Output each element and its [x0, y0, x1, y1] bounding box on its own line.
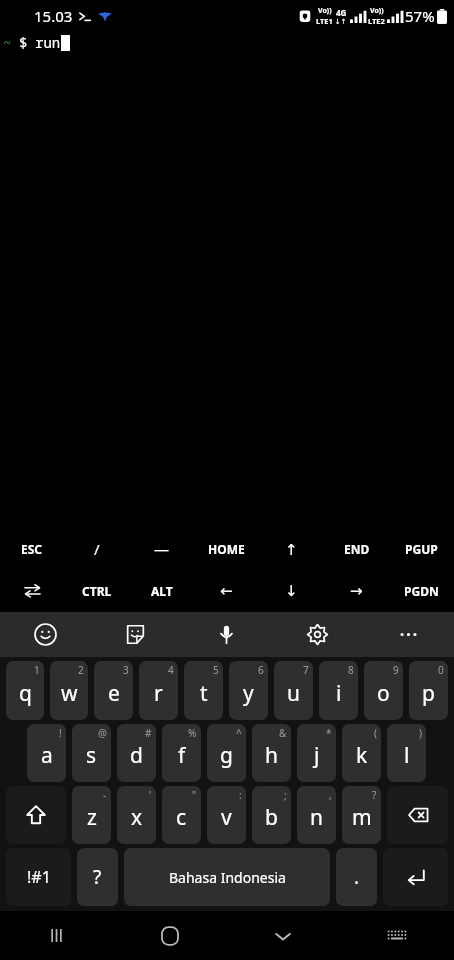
button[interactable]: # [117, 724, 156, 782]
staticText: LTE1 [316, 16, 333, 26]
staticText: PGUP [405, 541, 438, 557]
staticText: 7 [303, 663, 309, 677]
button[interactable]: ↑ [259, 529, 324, 569]
staticText: ( [374, 726, 377, 740]
staticText: p [422, 679, 435, 708]
staticText: n [310, 803, 323, 832]
staticText: Vo)) [318, 6, 332, 16]
button[interactable]: ( [342, 724, 381, 782]
button[interactable]: CTRL [64, 569, 129, 612]
button[interactable]: Change keyboard [340, 911, 454, 960]
button[interactable]: . [336, 848, 377, 906]
staticText: d [130, 741, 143, 770]
staticText: q [19, 679, 32, 708]
staticText: ← [220, 582, 233, 599]
button[interactable]: !#1 [6, 848, 71, 906]
staticText: b [265, 803, 278, 832]
staticText: z [87, 803, 97, 832]
button[interactable]: 7 [274, 661, 313, 720]
staticText: 15.03 [34, 6, 73, 26]
button[interactable]: Enter [383, 848, 448, 906]
staticText: - [103, 788, 107, 802]
staticText: r [154, 679, 163, 708]
staticText: 2 [78, 663, 84, 677]
button[interactable]: / [64, 529, 129, 569]
button[interactable]: * [297, 724, 336, 782]
staticText: 57% [405, 6, 435, 26]
staticText: % [188, 726, 197, 740]
button[interactable]: " [162, 786, 201, 844]
button[interactable]: % [162, 724, 201, 782]
staticText: HOME [208, 541, 245, 557]
staticText: l [404, 741, 410, 770]
staticText: END [344, 541, 370, 557]
button[interactable]: Keyboard settings [272, 612, 363, 657]
staticText: i [336, 679, 342, 708]
button[interactable]: More options [363, 612, 454, 657]
button[interactable]: Home [113, 911, 226, 960]
button[interactable]: 6 [229, 661, 268, 720]
staticText: f [178, 741, 186, 770]
button[interactable]: ) [387, 724, 426, 782]
staticText: # [145, 726, 152, 740]
staticText: & [279, 726, 287, 740]
button[interactable]: — [129, 529, 194, 569]
staticText: u [287, 679, 300, 708]
staticText: . [354, 864, 360, 890]
button[interactable]: 1 [6, 661, 44, 720]
button[interactable]: Emoji [0, 612, 90, 657]
button[interactable]: ^ [207, 724, 246, 782]
button[interactable]: Stickers [90, 612, 181, 657]
button[interactable]: ↓ [259, 569, 324, 612]
button[interactable]: → [324, 569, 389, 612]
button[interactable]: 5 [184, 661, 223, 720]
button[interactable]: Recents [0, 911, 113, 960]
staticText: , [329, 788, 332, 802]
button[interactable]: Bahasa Indonesia [124, 848, 330, 906]
button[interactable]: Tab [0, 569, 64, 612]
staticText: CTRL [82, 583, 112, 599]
button[interactable]: Voice input [181, 612, 272, 657]
staticText: o [377, 679, 390, 708]
button[interactable]: PGUP [389, 529, 454, 569]
button[interactable]: Backspace [387, 786, 448, 844]
button[interactable]: 8 [319, 661, 358, 720]
button[interactable]: & [252, 724, 291, 782]
staticText: 3 [123, 663, 129, 677]
staticText: ) [419, 726, 422, 740]
button[interactable]: ! [27, 724, 66, 782]
staticText: t [200, 679, 208, 708]
button[interactable]: Shift [6, 786, 66, 844]
button[interactable]: Hide keyboard [226, 911, 340, 960]
button[interactable]: 0 [409, 661, 448, 720]
staticText: ↓ [285, 582, 298, 599]
staticText: x [131, 803, 143, 832]
button[interactable]: ? [77, 848, 118, 906]
button[interactable]: ALT [129, 569, 194, 612]
button[interactable]: @ [72, 724, 111, 782]
button[interactable]: 3 [94, 661, 133, 720]
button[interactable]: ← [194, 569, 259, 612]
button[interactable]: ? [342, 786, 381, 844]
button[interactable]: HOME [194, 529, 259, 569]
button[interactable]: 4 [139, 661, 178, 720]
button[interactable]: , [297, 786, 336, 844]
staticText: 6 [258, 663, 264, 677]
button[interactable]: ESC [0, 529, 64, 569]
staticText: — [154, 539, 170, 559]
button[interactable]: 9 [364, 661, 403, 720]
button[interactable]: ; [252, 786, 291, 844]
staticText: 1 [34, 663, 40, 677]
button[interactable]: 2 [50, 661, 88, 720]
staticText: h [265, 741, 278, 770]
staticText: 0 [438, 663, 444, 677]
staticText: a [41, 741, 53, 770]
staticText: / [94, 539, 100, 559]
button[interactable]: - [72, 786, 111, 844]
button[interactable]: : [207, 786, 246, 844]
button[interactable]: END [324, 529, 389, 569]
button[interactable]: ' [117, 786, 156, 844]
staticText: !#1 [27, 866, 51, 888]
staticText: ? [93, 864, 102, 890]
button[interactable]: PGDN [389, 569, 454, 612]
